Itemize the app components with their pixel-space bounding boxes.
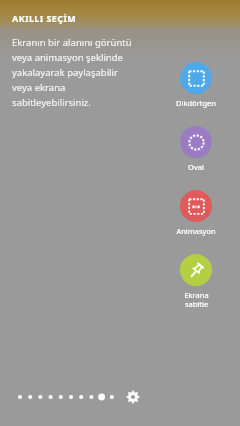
- staticText: Ekranın bir alanını görüntü veya animasy…: [12, 36, 140, 109]
- staticText: Oval: [188, 162, 204, 172]
- staticText: Animasyon: [176, 226, 216, 236]
- button[interactable]: Oval: [168, 126, 224, 172]
- staticText: Ekrana sabitle: [184, 290, 209, 309]
- button[interactable]: Dikdörtgen: [168, 62, 224, 108]
- staticText: AKILLI SEÇİM: [12, 12, 77, 24]
- button[interactable]: Ekrana sabitle: [168, 254, 224, 309]
- staticText: Dikdörtgen: [176, 98, 216, 108]
- button[interactable]: Animasyon: [168, 190, 224, 236]
- button[interactable]: Settings: [122, 386, 144, 408]
